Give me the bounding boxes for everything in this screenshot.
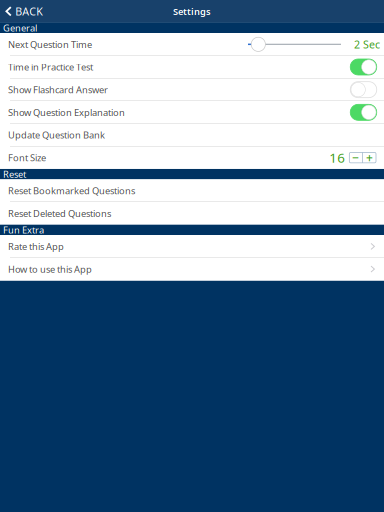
staticText: Reset Deleted Questions — [8, 207, 111, 220]
button[interactable]: How to use this App — [0, 258, 384, 280]
button[interactable]: Toggle, on — [350, 104, 380, 120]
staticText: 16 — [329, 149, 345, 166]
button[interactable]: Next Question Time — [0, 33, 384, 56]
staticText: + — [366, 150, 373, 166]
staticText: 2 Sec — [354, 37, 380, 51]
staticText: Time in Practice Test — [8, 61, 93, 73]
button[interactable]: Font Size — [0, 146, 384, 169]
staticText: Rate this App — [8, 240, 64, 253]
button[interactable]: Update Question Bank — [0, 124, 384, 146]
staticText: Update Question Bank — [8, 129, 105, 141]
staticText: How to use this App — [8, 263, 92, 275]
staticText: BACK — [15, 4, 43, 18]
staticText: General — [3, 22, 37, 34]
staticText: Settings — [173, 5, 211, 17]
button[interactable]: Time in Practice Test — [0, 56, 384, 78]
button[interactable]: Toggle, on — [350, 59, 380, 75]
staticText: Font Size — [8, 151, 46, 164]
staticText: − — [352, 150, 359, 166]
staticText: Show Flashcard Answer — [8, 83, 108, 96]
button[interactable]: Rate this App — [0, 235, 384, 258]
button[interactable]: Toggle, off — [350, 82, 380, 98]
staticText: Reset — [3, 168, 26, 180]
button[interactable]: BACK — [0, 0, 49, 23]
staticText: Fun Extra — [3, 224, 44, 236]
button[interactable]: Show Flashcard Answer — [0, 78, 384, 101]
button[interactable]: Reset Deleted Questions — [0, 202, 384, 225]
staticText: Reset Bookmarked Questions — [8, 184, 135, 197]
staticText: Show Question Explanation — [8, 106, 125, 118]
button[interactable]: Show Question Explanation — [0, 101, 384, 124]
button[interactable]: Reset Bookmarked Questions — [0, 179, 384, 202]
button[interactable]: Decrease font size — [349, 152, 362, 163]
staticText: Next Question Time — [8, 38, 92, 50]
button[interactable]: Increase font size — [363, 152, 376, 163]
